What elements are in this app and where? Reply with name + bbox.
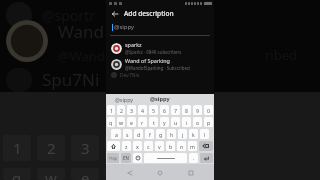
- staticText: f: [149, 131, 151, 138]
- button[interactable]: o: [193, 117, 202, 127]
- button[interactable]: 2: [117, 105, 125, 115]
- button[interactable]: c: [144, 141, 153, 151]
- button[interactable]: z: [122, 141, 131, 151]
- staticText: b: [169, 143, 173, 150]
- staticText: v: [158, 143, 161, 150]
- staticText: h: [170, 131, 174, 138]
- button[interactable]: 9: [193, 105, 202, 115]
- staticText: o: [196, 119, 200, 126]
- button[interactable]: 5: [149, 105, 158, 115]
- button[interactable]: b: [166, 141, 175, 151]
- button[interactable]: Space: [144, 153, 187, 163]
- staticText: 2: [120, 107, 123, 114]
- staticText: ribed: [265, 46, 298, 64]
- staticText: p: [207, 119, 211, 126]
- button[interactable]: @sippy: [106, 94, 142, 104]
- staticText: ?1☺: [109, 156, 118, 161]
- button[interactable]: u: [171, 117, 180, 127]
- button[interactable]: Backspace: [199, 141, 213, 151]
- button[interactable]: v: [155, 141, 164, 151]
- button[interactable]: x: [133, 141, 142, 151]
- button[interactable]: 8: [182, 105, 191, 115]
- button[interactable]: @sippy: [142, 94, 178, 104]
- staticText: @Wando: [58, 47, 113, 65]
- button[interactable]: 7: [171, 105, 180, 115]
- staticText: e: [130, 119, 133, 126]
- button[interactable]: a: [111, 129, 121, 139]
- button[interactable]: r: [138, 117, 147, 127]
- staticText: @sippy: [150, 95, 170, 103]
- button[interactable]: 6: [160, 105, 169, 115]
- staticText: Dev7Nix: [120, 72, 140, 79]
- staticText: 0: [207, 107, 210, 114]
- button[interactable]: d: [134, 129, 143, 139]
- staticText: Add description: [124, 9, 174, 18]
- staticText: q: [12, 168, 22, 180]
- button[interactable]: f: [145, 129, 154, 139]
- staticText: d: [137, 131, 141, 138]
- staticText: z: [125, 143, 128, 150]
- button[interactable]: h: [167, 129, 176, 139]
- button[interactable]: EN: [121, 153, 131, 163]
- button[interactable]: w: [117, 117, 125, 127]
- staticText: e: [81, 168, 90, 180]
- button[interactable]: e: [127, 117, 136, 127]
- button[interactable]: .: [189, 153, 198, 163]
- staticText: k: [192, 131, 195, 138]
- staticText: 8: [185, 107, 188, 114]
- button[interactable]: Dev7Nix: [106, 72, 214, 79]
- staticText: Spu7Ni: [42, 68, 100, 91]
- button[interactable]: Enter: [200, 153, 213, 163]
- staticText: m: [190, 143, 195, 150]
- button[interactable]: y: [160, 117, 169, 127]
- button[interactable]: k: [189, 129, 198, 139]
- staticText: r: [141, 119, 144, 126]
- staticText: l: [204, 131, 206, 138]
- staticText: g: [159, 131, 163, 138]
- staticText: 3: [130, 107, 133, 114]
- button[interactable]: sparkz: [106, 40, 214, 56]
- staticText: 9: [196, 107, 199, 114]
- button[interactable]: p: [204, 117, 213, 127]
- button[interactable]: j: [178, 129, 187, 139]
- staticText: 3: [81, 138, 90, 158]
- button[interactable]: Wand of Sparking: [106, 56, 214, 72]
- button[interactable]: Emoji: [133, 153, 142, 163]
- button[interactable]: g: [156, 129, 165, 139]
- staticText: 2: [47, 138, 56, 158]
- staticText: @sippy: [114, 23, 135, 31]
- staticText: x: [136, 143, 139, 150]
- button[interactable]: Shift: [107, 141, 120, 151]
- staticText: n: [180, 143, 184, 150]
- button[interactable]: t: [149, 117, 158, 127]
- staticText: 7: [174, 107, 177, 114]
- staticText: 1: [110, 107, 113, 114]
- staticText: @sportr: [42, 6, 95, 25]
- button[interactable]: ?1☺: [107, 153, 119, 163]
- staticText: q: [109, 119, 113, 126]
- staticText: c: [147, 143, 150, 150]
- staticText: u: [174, 119, 178, 126]
- button[interactable]: Recents: [184, 169, 198, 176]
- staticText: EN: [123, 155, 129, 161]
- staticText: a: [115, 131, 118, 138]
- button[interactable]: 0: [204, 105, 213, 115]
- staticText: @sippy: [126, 98, 194, 125]
- button[interactable]: q: [107, 117, 115, 127]
- button[interactable]: n: [177, 141, 186, 151]
- button[interactable]: l: [200, 129, 209, 139]
- staticText: 4: [141, 107, 144, 114]
- button[interactable]: Home: [153, 169, 167, 176]
- button[interactable]: i: [182, 117, 191, 127]
- button[interactable]: s: [123, 129, 132, 139]
- staticText: t: [153, 119, 155, 126]
- staticText: 4: [115, 138, 124, 158]
- button[interactable]: 4: [138, 105, 147, 115]
- button[interactable]: m: [188, 141, 197, 151]
- button[interactable]: Back: [123, 169, 137, 176]
- button[interactable]: 3: [127, 105, 136, 115]
- button[interactable]: 1: [107, 105, 115, 115]
- button[interactable]: Back: [110, 9, 120, 19]
- staticText: .: [193, 155, 195, 162]
